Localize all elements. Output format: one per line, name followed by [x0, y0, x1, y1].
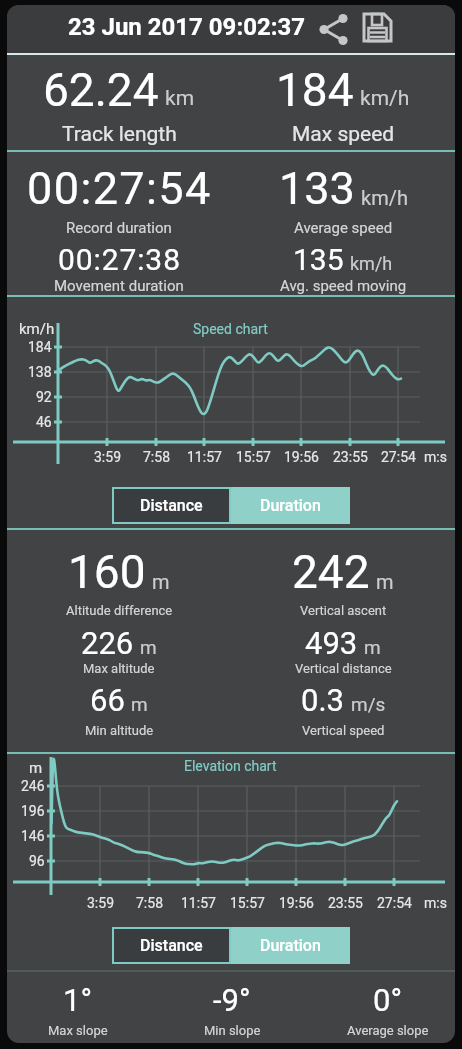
- staticText: Distance: [140, 496, 203, 515]
- staticText: 00:27:54: [27, 162, 212, 215]
- staticText: Vertical speed: [302, 723, 385, 738]
- staticText: Elevation chart: [184, 758, 277, 774]
- button[interactable]: Distance: [112, 487, 231, 524]
- staticText: Duration: [260, 936, 321, 955]
- staticText: 11:57: [181, 895, 216, 911]
- staticText: Max altitude: [83, 661, 155, 676]
- staticText: Avg. speed moving: [280, 277, 407, 295]
- staticText: 15:57: [230, 895, 265, 911]
- staticText: 19:56: [284, 449, 319, 465]
- staticText: 7:58: [143, 449, 170, 465]
- staticText: Track length: [62, 122, 177, 147]
- staticText: Vertical distance: [295, 661, 392, 676]
- button[interactable]: Duration: [231, 927, 350, 964]
- staticText: 242: [292, 545, 370, 599]
- button[interactable]: Distance: [112, 927, 231, 964]
- staticText: 146: [21, 828, 45, 844]
- staticText: 15:57: [236, 449, 271, 465]
- staticText: Average slope: [347, 1023, 429, 1038]
- staticText: m: [140, 636, 157, 658]
- staticText: 160: [68, 545, 146, 599]
- staticText: 138: [28, 364, 52, 380]
- staticText: km/h: [360, 86, 410, 111]
- staticText: 0.3: [301, 682, 345, 718]
- staticText: m: [29, 759, 43, 777]
- staticText: 23 Jun 2017 09:02:37: [68, 13, 305, 41]
- staticText: Max slope: [48, 1023, 108, 1038]
- staticText: 19:56: [279, 895, 314, 911]
- staticText: 3:59: [94, 449, 121, 465]
- staticText: 27:54: [377, 895, 412, 911]
- staticText: Distance: [140, 936, 203, 955]
- staticText: 23:55: [333, 449, 368, 465]
- staticText: 27:54: [381, 449, 416, 465]
- staticText: m:s: [424, 895, 447, 911]
- staticText: -9°: [213, 982, 251, 1018]
- staticText: 23:55: [328, 895, 363, 911]
- staticText: 184: [28, 339, 52, 355]
- staticText: 135: [293, 242, 344, 277]
- staticText: m: [364, 636, 381, 658]
- staticText: m: [152, 570, 170, 593]
- staticText: 493: [305, 625, 358, 661]
- staticText: km/h: [19, 320, 55, 338]
- staticText: 92: [36, 389, 52, 405]
- staticText: m: [376, 570, 394, 593]
- staticText: 00:27:38: [58, 242, 181, 277]
- staticText: 226: [81, 625, 134, 661]
- staticText: 46: [36, 414, 52, 430]
- staticText: m: [131, 693, 148, 715]
- staticText: 66: [90, 682, 125, 718]
- staticText: km: [165, 86, 195, 111]
- staticText: 3:59: [87, 895, 114, 911]
- button[interactable]: [319, 13, 353, 47]
- staticText: Speed chart: [193, 321, 268, 337]
- staticText: Min altitude: [85, 723, 154, 738]
- staticText: Vertical ascent: [300, 603, 387, 618]
- button[interactable]: [362, 12, 396, 46]
- staticText: m:s: [424, 449, 447, 465]
- staticText: 0°: [373, 982, 403, 1018]
- staticText: 246: [21, 778, 45, 794]
- staticText: m/s: [351, 693, 386, 715]
- staticText: 11:57: [187, 449, 222, 465]
- staticText: 7:58: [136, 895, 163, 911]
- staticText: Max speed: [292, 122, 395, 147]
- staticText: Duration: [260, 496, 321, 515]
- staticText: km/h: [361, 186, 408, 209]
- staticText: 62.24: [43, 63, 159, 117]
- staticText: km/h: [350, 253, 393, 274]
- staticText: Movement duration: [54, 277, 184, 295]
- staticText: 196: [21, 803, 45, 819]
- staticText: 184: [276, 63, 354, 117]
- staticText: 96: [29, 853, 45, 869]
- staticText: Min slope: [204, 1023, 261, 1038]
- staticText: Record duration: [66, 219, 172, 237]
- button[interactable]: Duration: [231, 487, 350, 524]
- staticText: Average speed: [294, 219, 393, 237]
- staticText: 133: [279, 162, 355, 215]
- staticText: 1°: [63, 982, 93, 1018]
- staticText: Altitude difference: [66, 603, 173, 618]
